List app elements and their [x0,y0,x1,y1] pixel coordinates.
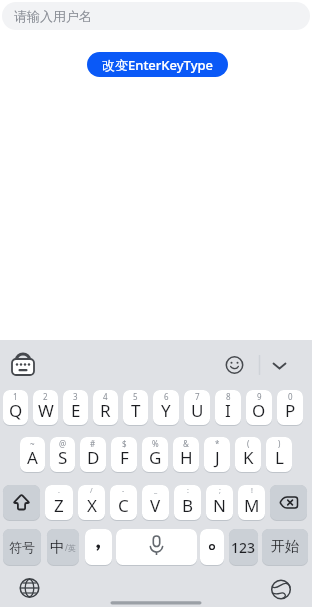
staticText: F [120,446,129,469]
button[interactable]: 8 [215,390,241,425]
staticText: 6 [164,391,169,402]
staticText: & [183,438,189,449]
staticText: X [87,494,97,517]
staticText: Q [9,399,23,422]
button[interactable]: / [78,485,105,520]
staticText: N [213,494,226,517]
staticText: % [152,438,159,449]
staticText: 1 [13,391,18,402]
staticText: O [252,399,266,422]
staticText: R [100,399,111,422]
staticText: ; [219,486,221,496]
button[interactable]: 请输入用户名 [2,2,310,30]
button[interactable] [200,529,224,565]
staticText: V [150,494,161,517]
staticText: . [58,486,60,496]
button[interactable]: 符号 [3,529,41,565]
button[interactable]: % [142,437,168,472]
button[interactable] [270,485,307,520]
button[interactable]: 中 [47,529,79,565]
staticText: 开始 [271,538,299,556]
button[interactable] [85,529,112,565]
staticText: 8 [226,391,231,402]
button[interactable]: 123 [229,529,258,565]
button[interactable]: 9 [246,390,272,425]
staticText: B [182,494,194,517]
staticText: / [90,486,93,496]
button[interactable] [116,529,197,565]
staticText: 请输入用户名 [14,8,92,24]
staticText: @ [59,438,67,449]
button[interactable]: 0 [277,390,303,425]
staticText: M [244,494,260,517]
button[interactable]: 2 [33,390,58,425]
staticText: : [187,486,189,496]
button[interactable] [3,485,40,520]
staticText: Y [161,399,171,422]
button[interactable]: 1 [3,390,28,425]
staticText: H [180,446,193,469]
staticText: /英 [65,542,76,553]
staticText: D [87,446,100,469]
button[interactable]: ) [266,437,292,472]
staticText: ~ [30,438,35,449]
staticText: 5 [133,391,138,402]
button[interactable]: $ [111,437,137,472]
button[interactable]: @ [50,437,75,472]
button[interactable]: ; [206,485,233,520]
button[interactable]: 3 [63,390,88,425]
button[interactable]: : [174,485,201,520]
button[interactable]: 6 [153,390,179,425]
button[interactable]: _ [142,485,169,520]
staticText: W [38,399,54,422]
staticText: 改变EnterKeyType [102,56,214,74]
staticText: 7 [195,391,200,402]
staticText: 123 [231,538,256,557]
staticText: 2 [43,391,48,402]
staticText: E [71,399,81,422]
button[interactable]: ( [235,437,261,472]
staticText: 中 [50,538,65,557]
staticText: 符号 [9,539,35,555]
button[interactable]: * [204,437,230,472]
staticText: P [285,399,296,422]
button[interactable]: ! [238,485,265,520]
staticText: K [243,446,254,469]
staticText: * [215,438,220,449]
staticText: Z [54,494,64,517]
button[interactable]: . [45,485,73,520]
staticText: S [58,446,68,469]
staticText: 4 [103,391,108,402]
staticText: $ [122,438,127,449]
staticText: L [275,446,284,469]
staticText: ( [247,438,250,449]
staticText: G [149,446,162,469]
button[interactable]: 7 [184,390,210,425]
staticText: I [225,399,231,422]
button[interactable]: 5 [123,390,148,425]
staticText: - [122,486,125,496]
button[interactable]: 开始 [262,529,308,565]
button[interactable]: - [110,485,137,520]
staticText: A [27,446,38,469]
staticText: 3 [73,391,78,402]
staticText: ) [278,438,281,449]
staticText: 9 [257,391,262,402]
button[interactable]: # [80,437,106,472]
staticText: T [131,399,141,422]
staticText: 0 [288,391,293,402]
staticText: C [118,494,129,517]
button[interactable]: 4 [93,390,118,425]
button[interactable]: ~ [20,437,45,472]
button[interactable]: 改变EnterKeyType [87,52,228,77]
button[interactable]: & [173,437,199,472]
staticText: _ [154,486,158,496]
staticText: U [191,399,204,422]
staticText: ! [251,486,253,496]
staticText: J [215,446,220,469]
staticText: # [90,438,96,449]
